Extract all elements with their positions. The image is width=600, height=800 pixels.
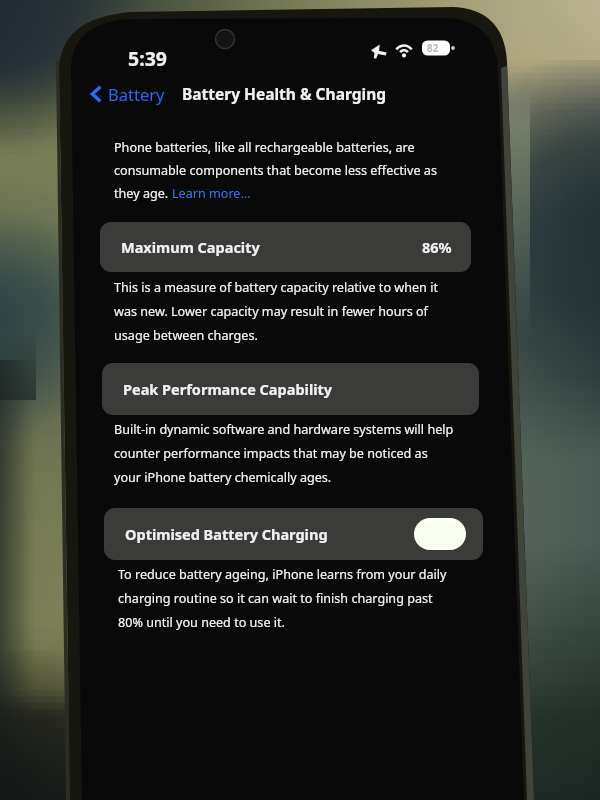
staticText: counter performance impacts that may be … [114,445,428,462]
staticText: consumable components that become less e… [114,162,437,179]
staticText: Optimised Battery Charging [125,524,328,544]
staticText: 82 [427,41,439,55]
button[interactable]: Optimised Battery Charging [104,508,483,560]
staticText: To reduce battery ageing, iPhone learns … [118,566,447,583]
staticText: 5:39 [128,45,167,72]
staticText: usage between charges. [114,327,258,344]
button[interactable]: Learn more... [172,185,251,202]
staticText: Peak Performance Capability [123,379,333,399]
staticText: Battery Health & Charging [182,83,386,104]
staticText: they age. [114,185,172,202]
staticText: 86% [422,237,452,257]
button[interactable]: Battery [86,80,169,108]
staticText: your iPhone battery chemically ages. [114,469,332,486]
staticText: This is a measure of battery capacity re… [114,279,438,296]
staticText: Maximum Capacity [121,237,260,257]
staticText: Built-in dynamic software and hardware s… [114,421,454,438]
staticText: charging routine so it can wait to finis… [118,590,433,607]
staticText: was new. Lower capacity may result in fe… [114,303,428,320]
staticText: Battery [108,83,165,105]
button[interactable]: Optimised Battery Charging toggle, on [414,518,466,550]
staticText: 80% until you need to use it. [118,614,285,631]
button[interactable]: Maximum Capacity [100,222,471,272]
button[interactable]: Peak Performance Capability [102,363,479,415]
staticText: Phone batteries, like all rechargeable b… [114,139,415,156]
